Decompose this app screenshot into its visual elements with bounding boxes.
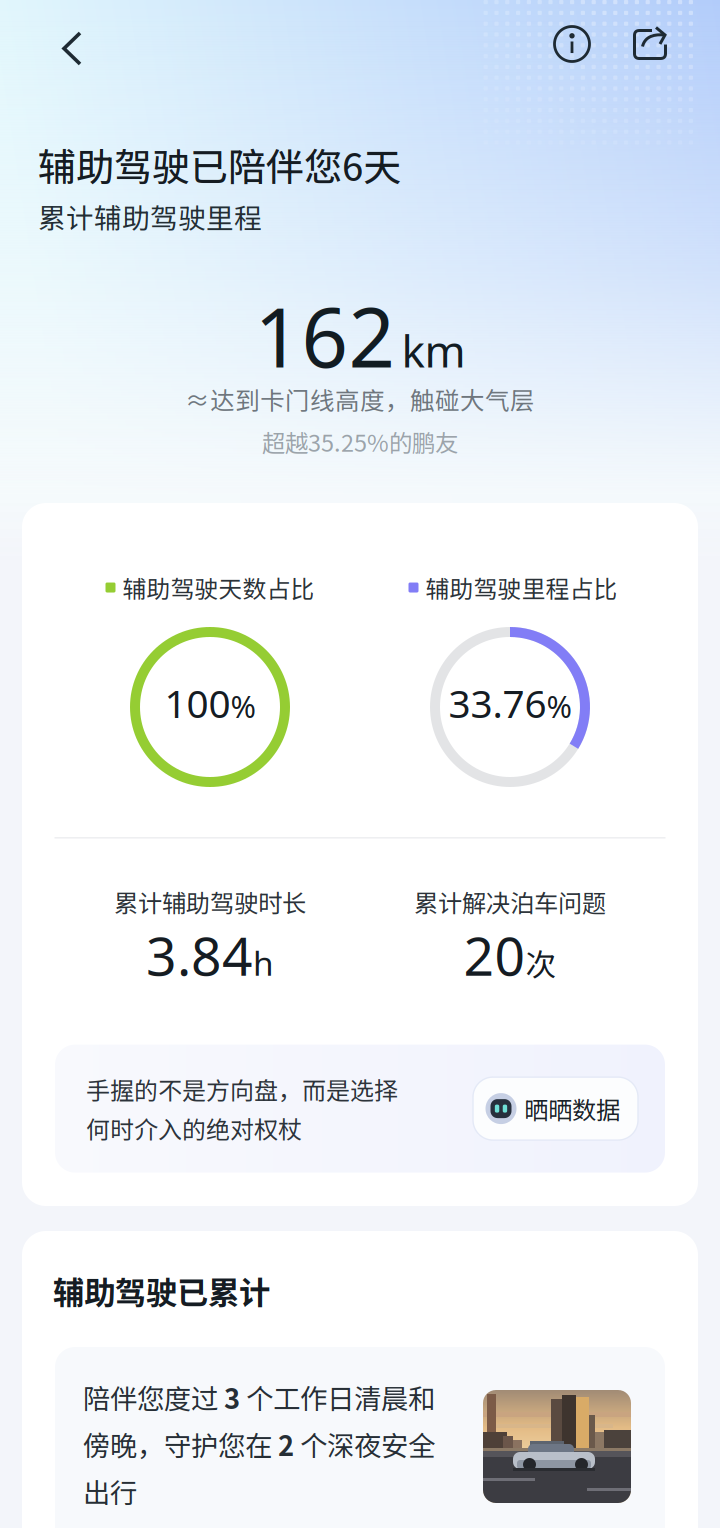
- button[interactable]: Back: [48, 22, 92, 66]
- button[interactable]: Share: [628, 22, 672, 66]
- staticText: 超越35.25%的鹏友: [262, 424, 458, 458]
- staticText: 出行: [83, 1471, 137, 1511]
- staticText: 个工作日清晨和: [240, 1377, 435, 1417]
- staticText: 何时介入的绝对权杖: [86, 1111, 302, 1145]
- staticText: 3.84: [146, 920, 253, 990]
- staticText: km: [401, 321, 465, 380]
- staticText: 晒晒数据: [524, 1091, 620, 1126]
- staticText: h: [253, 941, 274, 985]
- staticText: 累计辅助驾驶时长: [114, 884, 306, 919]
- button[interactable]: Information: [550, 22, 594, 66]
- staticText: 20: [463, 920, 525, 990]
- staticText: 辅助驾驶已累计: [53, 1268, 270, 1313]
- staticText: 2: [278, 1424, 294, 1464]
- staticText: 个深夜安全: [294, 1424, 435, 1464]
- button[interactable]: 晒晒数据: [473, 1077, 638, 1140]
- staticText: %: [546, 686, 571, 726]
- staticText: 100: [164, 677, 230, 729]
- staticText: 傍晚，守护您在: [83, 1424, 278, 1464]
- staticText: 3: [224, 1377, 240, 1417]
- staticText: 手握的不是方向盘，而是选择: [86, 1072, 398, 1106]
- staticText: 162: [254, 282, 395, 390]
- staticText: 33.76: [448, 677, 546, 729]
- staticText: 辅助驾驶天数占比: [122, 570, 314, 605]
- staticText: 次: [525, 940, 556, 985]
- staticText: 辅助驾驶已陪伴您6天: [38, 137, 401, 192]
- staticText: %: [230, 686, 255, 726]
- staticText: 累计解决泊车问题: [414, 884, 606, 919]
- staticText: 累计辅助驾驶里程: [38, 196, 262, 236]
- staticText: 辅助驾驶里程占比: [425, 570, 617, 605]
- staticText: ≈达到卡门线高度，触碰大气层: [185, 381, 535, 417]
- staticText: 陪伴您度过: [83, 1377, 224, 1417]
